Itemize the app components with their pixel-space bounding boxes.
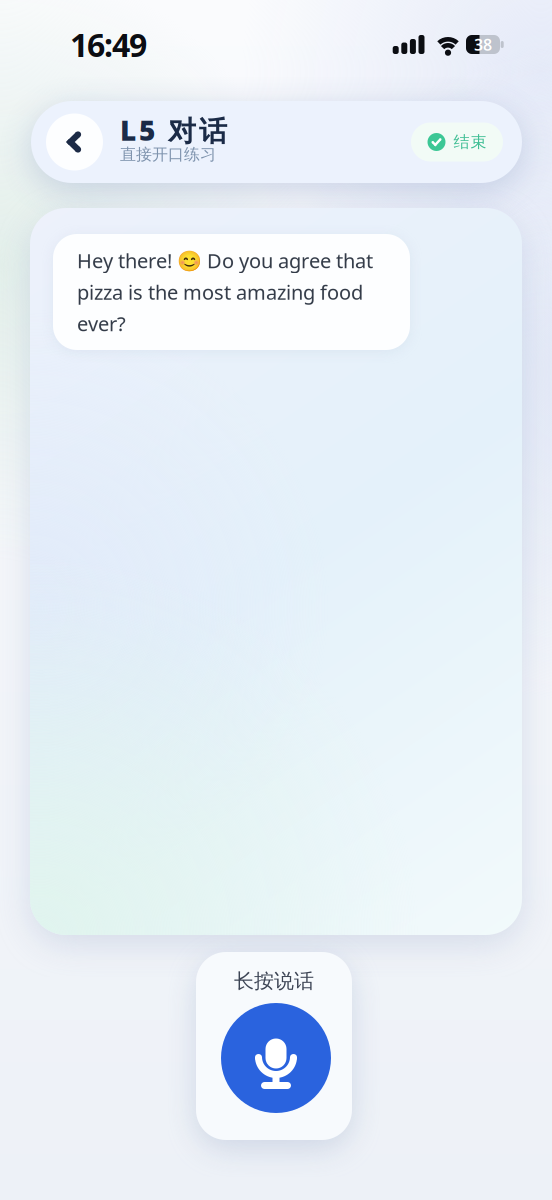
staticText: 长按说话: [234, 969, 314, 993]
button[interactable]: 长按说话: [196, 952, 352, 1140]
staticText: 结束: [453, 132, 486, 152]
staticText: 38: [474, 34, 492, 55]
staticText: pizza is the most amazing food: [77, 279, 363, 305]
button[interactable]: 结束: [411, 122, 503, 161]
staticText: 16:49: [70, 23, 147, 66]
staticText: Hey there! 😊 Do you agree that: [77, 247, 373, 274]
button[interactable]: [46, 113, 103, 170]
staticText: L5 对话: [120, 111, 227, 149]
staticText: 直接开口练习: [120, 145, 216, 164]
staticText: ever?: [77, 310, 126, 337]
